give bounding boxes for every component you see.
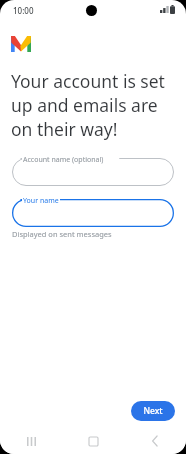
button[interactable]: Your name	[12, 199, 174, 227]
staticText: Displayed on sent messages	[12, 229, 112, 239]
button[interactable]: Back	[124, 428, 186, 454]
staticText: Next	[143, 405, 163, 417]
button[interactable]: Recent apps	[0, 428, 62, 454]
button[interactable]: Home	[62, 428, 124, 454]
staticText: Your name	[23, 196, 59, 206]
staticText: 10:00	[13, 5, 34, 16]
staticText: Your account is set up and emails are on…	[11, 69, 177, 141]
button[interactable]: Account name (optional)	[12, 158, 174, 186]
staticText: Account name (optional)	[23, 155, 104, 165]
button[interactable]: Next	[131, 401, 175, 421]
